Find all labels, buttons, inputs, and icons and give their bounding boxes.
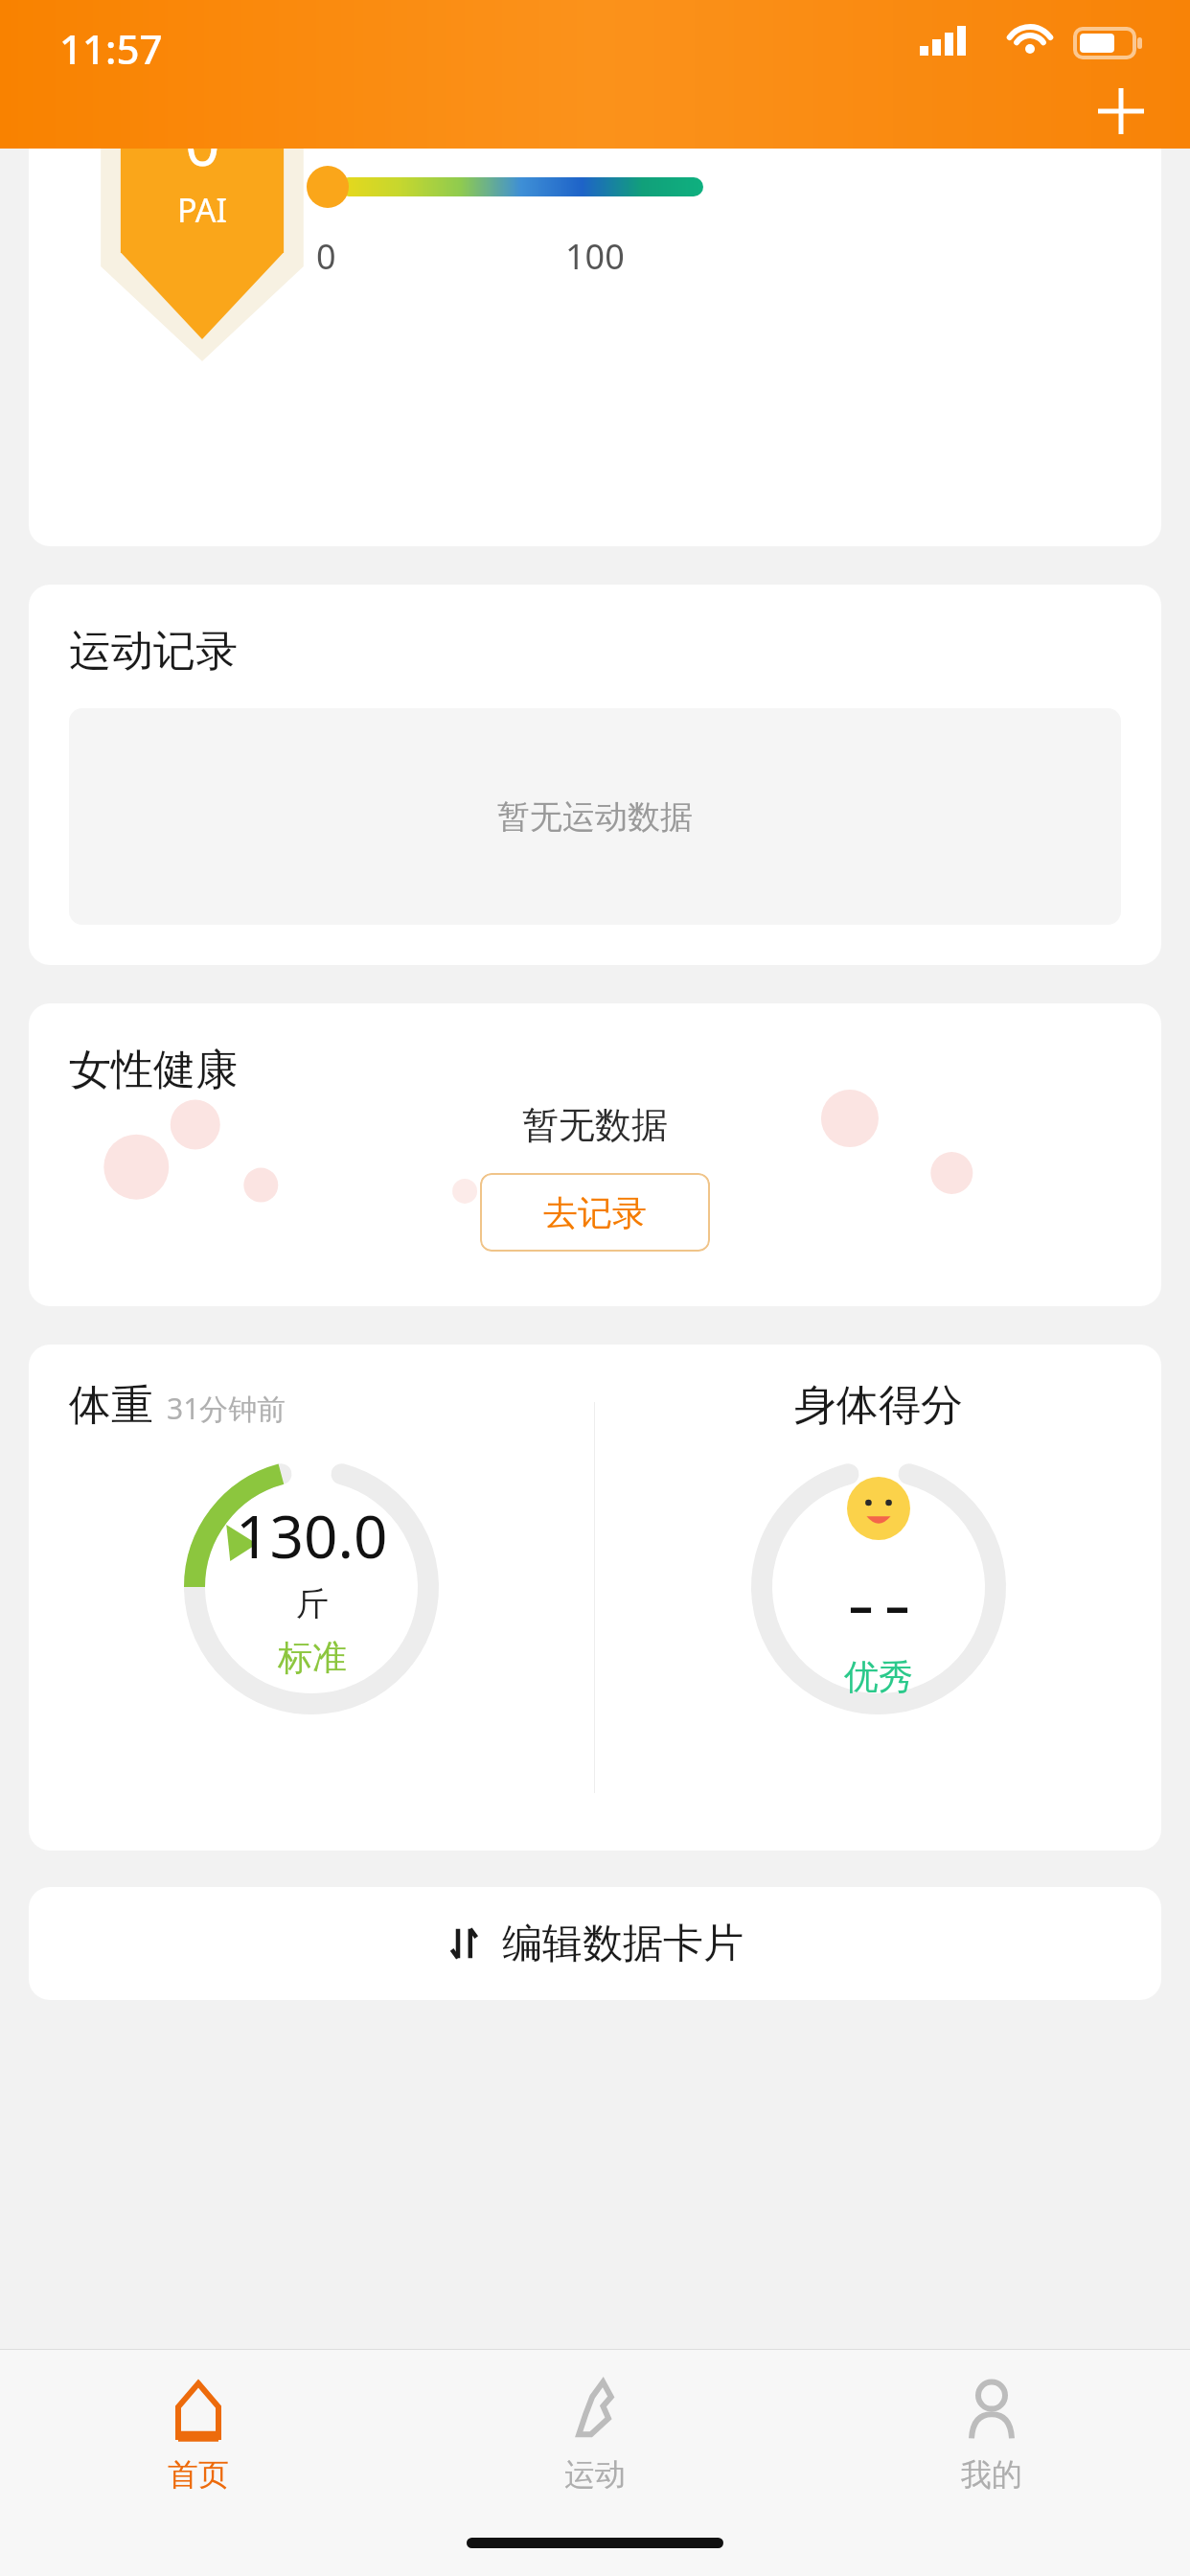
staticText: 女性健康: [69, 1044, 238, 1096]
staticText: 运动记录: [69, 625, 238, 678]
staticText: 斤: [296, 1583, 329, 1624]
staticText: 暂无运动数据: [497, 796, 693, 838]
staticText: 运动: [564, 2455, 626, 2494]
staticText: 身体得分: [794, 1379, 963, 1432]
button[interactable]: 编辑数据卡片: [29, 1887, 1161, 2000]
staticText: 标准: [278, 1636, 347, 1679]
button[interactable]: 运动: [397, 2350, 793, 2520]
staticText: 体重: [69, 1379, 153, 1432]
button[interactable]: Add: [1079, 69, 1163, 153]
button[interactable]: 首页: [0, 2350, 397, 2520]
staticText: 31分钟前: [167, 1389, 286, 1428]
staticText: 我的: [961, 2455, 1022, 2494]
staticText: 11:57: [59, 21, 163, 76]
staticText: 优秀: [844, 1655, 913, 1698]
button[interactable]: 去记录: [480, 1173, 710, 1252]
button[interactable]: 体重: [29, 1345, 1161, 1851]
staticText: 0: [185, 149, 220, 184]
staticText: 首页: [168, 2455, 229, 2494]
button[interactable]: 运动记录: [29, 585, 1161, 965]
staticText: – –: [849, 1573, 909, 1638]
button[interactable]: 0: [29, 149, 1161, 546]
staticText: 去记录: [543, 1191, 647, 1234]
staticText: 编辑数据卡片: [502, 1919, 744, 1969]
staticText: 暂无数据: [522, 1102, 668, 1148]
staticText: 100: [565, 233, 625, 280]
button[interactable]: 我的: [793, 2350, 1190, 2520]
staticText: PAI: [177, 188, 228, 232]
staticText: 130.0: [236, 1495, 388, 1575]
staticText: 0: [316, 233, 336, 280]
button[interactable]: 女性健康: [29, 1003, 1161, 1306]
